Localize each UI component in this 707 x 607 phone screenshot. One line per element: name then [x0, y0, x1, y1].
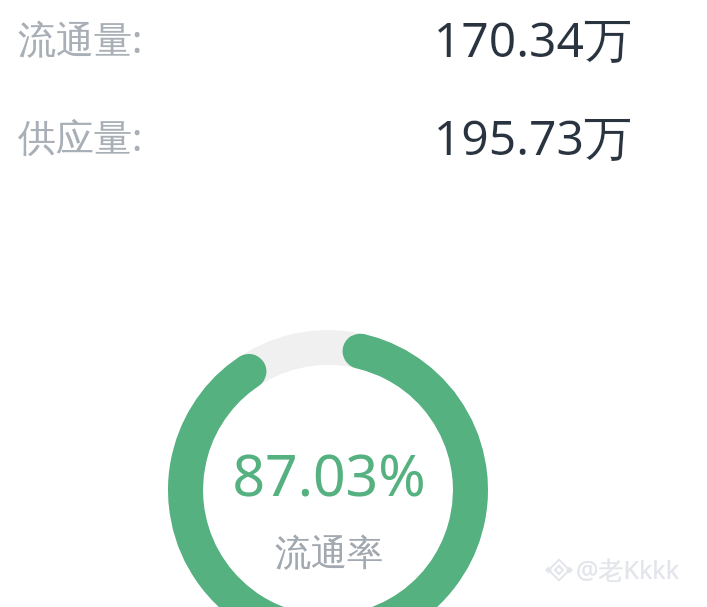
staticText: 流通量: — [18, 12, 143, 64]
staticText: 195.73万 — [433, 104, 632, 170]
staticText: 170.34万 — [433, 6, 632, 72]
staticText: 87.03% — [232, 435, 426, 513]
button[interactable]: 流通量: — [18, 12, 143, 64]
staticText: 供应量: — [18, 110, 143, 162]
staticText: 流通率 — [275, 530, 383, 575]
button[interactable]: 供应量: — [18, 110, 143, 162]
staticText: @老Kkkk — [576, 552, 680, 586]
button[interactable]: 170.34万 — [312, 6, 632, 72]
button[interactable]: 流通率 87.03% — [0, 0, 707, 607]
button[interactable]: 195.73万 — [312, 104, 632, 170]
